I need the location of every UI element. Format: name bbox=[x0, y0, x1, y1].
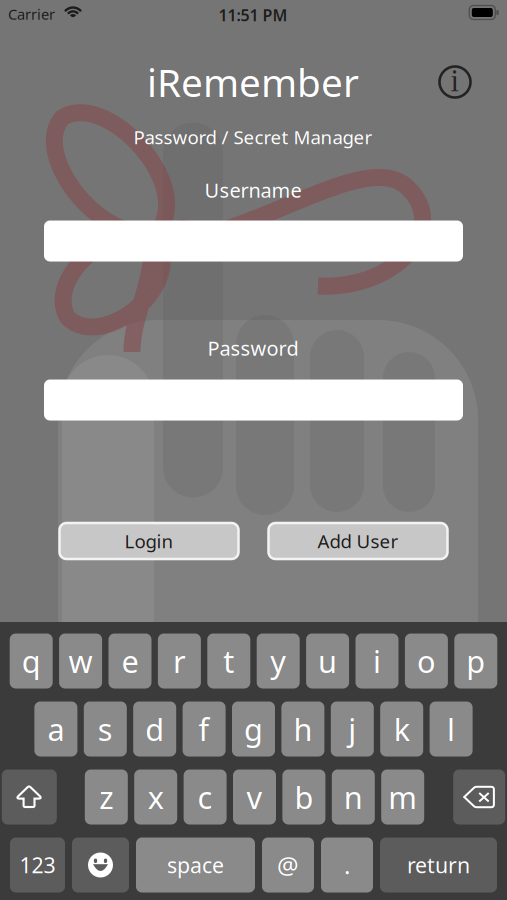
button[interactable]: e bbox=[108, 633, 151, 688]
button[interactable]: z bbox=[85, 769, 128, 824]
staticText: Carrier bbox=[8, 4, 55, 24]
staticText: j bbox=[348, 709, 356, 749]
staticText: . bbox=[344, 849, 350, 881]
staticText: Login bbox=[124, 529, 173, 553]
button[interactable]: k bbox=[380, 701, 423, 756]
button[interactable]: t bbox=[207, 633, 250, 688]
button[interactable]: j bbox=[331, 701, 374, 756]
button[interactable]: c bbox=[184, 769, 227, 824]
staticText: i bbox=[373, 641, 381, 681]
staticText: l bbox=[447, 709, 455, 749]
staticText: y bbox=[270, 641, 286, 681]
button[interactable]: v bbox=[233, 769, 276, 824]
button[interactable]: l bbox=[430, 701, 473, 756]
staticText: k bbox=[394, 709, 410, 749]
staticText: a bbox=[47, 709, 64, 749]
staticText: Username bbox=[204, 177, 301, 203]
staticText: f bbox=[199, 709, 210, 749]
staticText: r bbox=[173, 641, 186, 681]
staticText: space bbox=[167, 851, 224, 879]
staticText: o bbox=[417, 641, 436, 681]
button[interactable]: space bbox=[136, 837, 255, 892]
staticText: s bbox=[98, 709, 113, 749]
staticText: @ bbox=[277, 849, 299, 881]
button[interactable]: a bbox=[34, 701, 77, 756]
staticText: t bbox=[223, 641, 234, 681]
staticText: p bbox=[466, 641, 485, 681]
button[interactable]: Add User bbox=[268, 523, 447, 559]
button[interactable]: s bbox=[84, 701, 127, 756]
staticText: return bbox=[407, 851, 470, 879]
staticText: b bbox=[294, 777, 313, 817]
button[interactable]: Emoji bbox=[72, 837, 129, 892]
button[interactable]: @ bbox=[262, 837, 314, 892]
staticText: h bbox=[293, 709, 312, 749]
button[interactable]: Info bbox=[439, 66, 470, 97]
staticText: g bbox=[244, 709, 263, 749]
staticText: d bbox=[145, 709, 164, 749]
button[interactable]: . bbox=[321, 837, 373, 892]
button[interactable]: p bbox=[454, 633, 497, 688]
button[interactable]: Delete bbox=[453, 769, 505, 824]
staticText: Password bbox=[207, 335, 298, 361]
staticText: e bbox=[121, 641, 138, 681]
button[interactable]: f bbox=[183, 701, 226, 756]
staticText: w bbox=[69, 641, 93, 681]
staticText: q bbox=[22, 641, 41, 681]
button[interactable]: r bbox=[158, 633, 201, 688]
button[interactable]: Login bbox=[59, 523, 238, 559]
button[interactable]: u bbox=[306, 633, 349, 688]
staticText: iRemember bbox=[147, 56, 359, 108]
button[interactable]: x bbox=[134, 769, 177, 824]
button[interactable]: n bbox=[332, 769, 375, 824]
staticText: m bbox=[388, 777, 417, 817]
button[interactable]: m bbox=[381, 769, 424, 824]
button[interactable]: h bbox=[281, 701, 324, 756]
staticText: 123 bbox=[19, 851, 55, 879]
staticText: i bbox=[450, 64, 459, 98]
staticText: 11:51 PM bbox=[218, 4, 287, 26]
button[interactable]: o bbox=[405, 633, 448, 688]
staticText: x bbox=[148, 777, 164, 817]
button[interactable]: b bbox=[282, 769, 325, 824]
button[interactable]: i bbox=[355, 633, 398, 688]
staticText: z bbox=[99, 777, 113, 817]
staticText: u bbox=[318, 641, 337, 681]
staticText: n bbox=[344, 777, 363, 817]
staticText: Add User bbox=[317, 529, 398, 553]
button[interactable]: d bbox=[133, 701, 176, 756]
button[interactable]: Shift bbox=[2, 769, 57, 824]
staticText: c bbox=[198, 777, 213, 817]
button[interactable]: y bbox=[257, 633, 300, 688]
button[interactable]: 123 bbox=[10, 837, 65, 892]
button[interactable]: w bbox=[59, 633, 102, 688]
button[interactable]: g bbox=[232, 701, 275, 756]
button[interactable]: q bbox=[10, 633, 53, 688]
button[interactable]: return bbox=[380, 837, 497, 892]
staticText: Password / Secret Manager bbox=[133, 125, 372, 149]
staticText: v bbox=[246, 777, 262, 817]
